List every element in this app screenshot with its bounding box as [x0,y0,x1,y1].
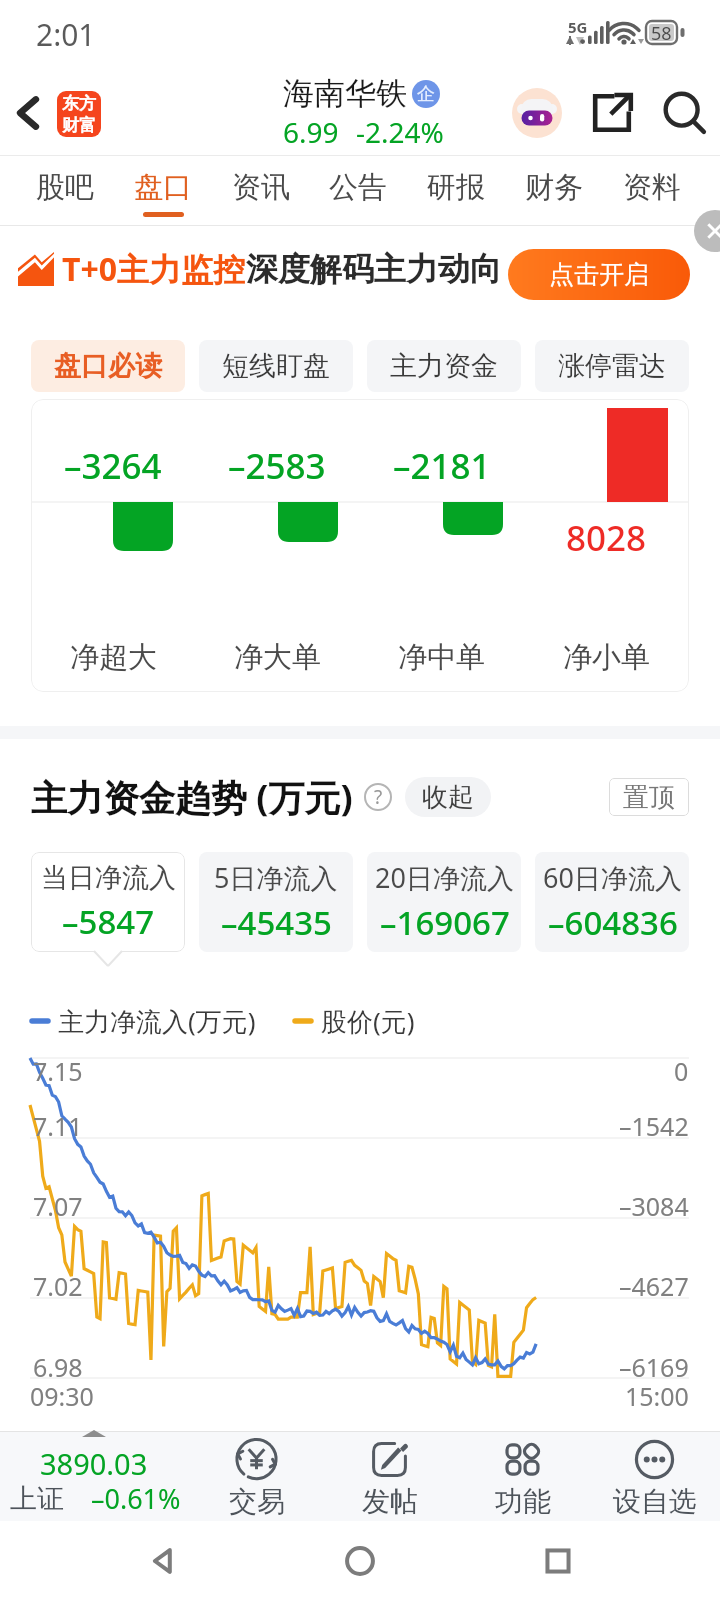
staticText: -2.24% [356,113,444,151]
button[interactable]: Back [0,70,56,156]
button[interactable]: 60日净流入 [535,852,689,952]
staticText: 收起 [422,781,474,814]
staticText: 5G [568,17,588,37]
staticText: –6169 [619,1350,689,1384]
staticText: 海南华铁 [283,74,407,113]
button[interactable]: Home [325,1526,395,1596]
button[interactable]: 20日净流入 [367,852,521,952]
staticText: 主力净流入(万元) [58,1003,256,1039]
staticText: 功能 [495,1484,551,1519]
staticText: 上证 [10,1482,64,1516]
staticText: 2:01 [36,14,96,55]
button[interactable]: 交易 [190,1432,323,1521]
staticText: 09:30 [30,1379,94,1413]
staticText: 盘口必读 [54,349,162,383]
button[interactable]: Close banner [694,210,720,252]
staticText: ? [374,784,383,810]
button[interactable]: 公告 [309,156,407,226]
button[interactable]: 股吧 [16,156,114,226]
button[interactable]: 点击开启 [508,249,690,300]
staticText: 短线盯盘 [222,349,330,383]
staticText: 20日净流入 [375,859,514,896]
button[interactable]: 设自选 [589,1432,720,1521]
staticText: –2181 [393,442,491,490]
staticText: 交易 [229,1484,285,1519]
button[interactable]: 当日净流入 [31,852,185,952]
staticText: 财务 [525,169,583,206]
staticText: 资料 [623,169,681,206]
button[interactable]: East Money [57,91,101,137]
button[interactable]: 资讯 [212,156,310,226]
staticText: 主力资金趋势 (万元) [31,773,353,821]
staticText: 当日净流入 [41,861,176,895]
staticText: 7.07 [33,1189,83,1223]
staticText: 净超大 [70,639,157,676]
staticText: 点击开启 [549,259,649,290]
button[interactable]: 功能 [456,1432,589,1521]
button[interactable]: Search [650,70,720,156]
button[interactable]: 研报 [407,156,505,226]
button[interactable]: 置顶 [609,778,689,816]
staticText: 60日净流入 [543,859,682,896]
staticText: 6.99 [283,113,339,151]
staticText: 发帖 [362,1484,418,1519]
button[interactable]: 盘口必读 [31,340,185,392]
button[interactable]: Help [363,782,393,812]
staticText: 7.11 [33,1109,83,1143]
staticText: –45435 [221,900,332,945]
staticText: 7.15 [33,1054,83,1088]
staticText: –0.61% [91,1480,181,1517]
staticText: –2583 [228,442,326,490]
staticText: –3264 [64,442,162,490]
staticText: 设自选 [613,1484,697,1519]
staticText: 5日净流入 [214,859,338,896]
button[interactable]: 5日净流入 [199,852,353,952]
staticText: 0 [674,1054,689,1088]
staticText: –4627 [619,1269,689,1303]
staticText: 8028 [566,514,647,562]
staticText: 东方 [62,93,96,114]
staticText: –169067 [380,900,510,945]
staticText: 7.02 [33,1269,83,1303]
staticText: 58 [651,21,672,44]
staticText: 涨停雷达 [558,349,666,383]
staticText: 净中单 [398,639,485,676]
staticText: 深度解码主力动向 [246,249,502,289]
staticText: 企 [417,83,435,106]
button[interactable]: AI assistant [500,70,574,156]
staticText: 6.98 [33,1350,83,1384]
button[interactable]: 盘口 [114,156,212,226]
staticText: –5847 [62,899,155,944]
button[interactable]: 收起 [405,777,491,817]
button[interactable]: 主力资金 [367,340,521,392]
button[interactable]: 财务 [505,156,603,226]
staticText: 净大单 [234,639,321,676]
staticText: 财富 [62,115,96,136]
button[interactable]: 3890.03 [0,1432,190,1521]
staticText: 股价(元) [321,1003,415,1039]
staticText: –1542 [619,1109,689,1143]
staticText: 置顶 [623,781,675,814]
button[interactable]: 资料 [603,156,701,226]
staticText: –3084 [619,1189,689,1223]
staticText: 主力资金 [390,349,498,383]
staticText: 15:00 [625,1379,689,1413]
button[interactable]: Share [574,70,650,156]
staticText: 盘口 [134,169,192,206]
staticText: 研报 [427,169,485,206]
staticText: –604836 [548,900,678,945]
staticText: 净小单 [563,639,650,676]
button[interactable]: Recent apps [523,1526,593,1596]
staticText: 3890.03 [40,1444,148,1483]
staticText: 股吧 [36,169,94,206]
button[interactable]: Back [128,1526,198,1596]
button[interactable]: 短线盯盘 [199,340,353,392]
button[interactable]: 发帖 [323,1432,456,1521]
staticText: 公告 [329,169,387,206]
staticText: T+0主力监控 [62,247,246,291]
button[interactable]: 涨停雷达 [535,340,689,392]
staticText: 资讯 [232,169,290,206]
